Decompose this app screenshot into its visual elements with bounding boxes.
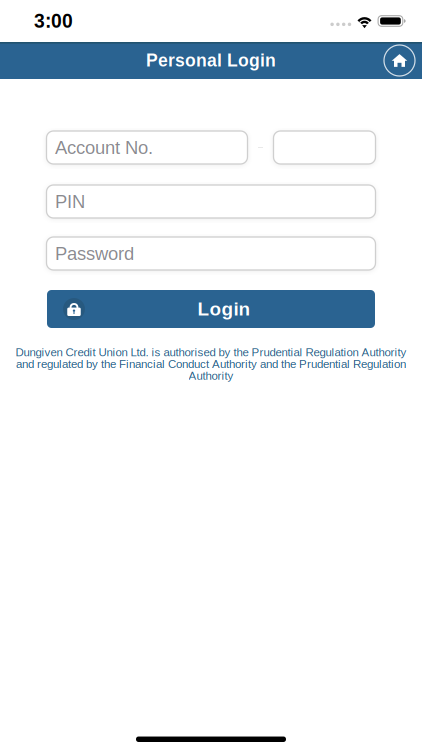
- button[interactable]: Login: [47, 290, 375, 328]
- staticText: PIN: [55, 191, 85, 212]
- staticText: Login: [197, 298, 250, 320]
- staticText: Dungiven Credit Union Ltd. is authorised…: [15, 346, 406, 359]
- staticText: Personal Login: [146, 51, 276, 70]
- staticText: 3:00: [34, 10, 73, 32]
- staticText: Account No.: [55, 137, 153, 158]
- staticText: Authority: [188, 369, 233, 382]
- staticText: Password: [55, 243, 134, 264]
- button[interactable]: Home: [381, 42, 417, 78]
- staticText: and regulated by the Financial Conduct A…: [16, 358, 406, 370]
